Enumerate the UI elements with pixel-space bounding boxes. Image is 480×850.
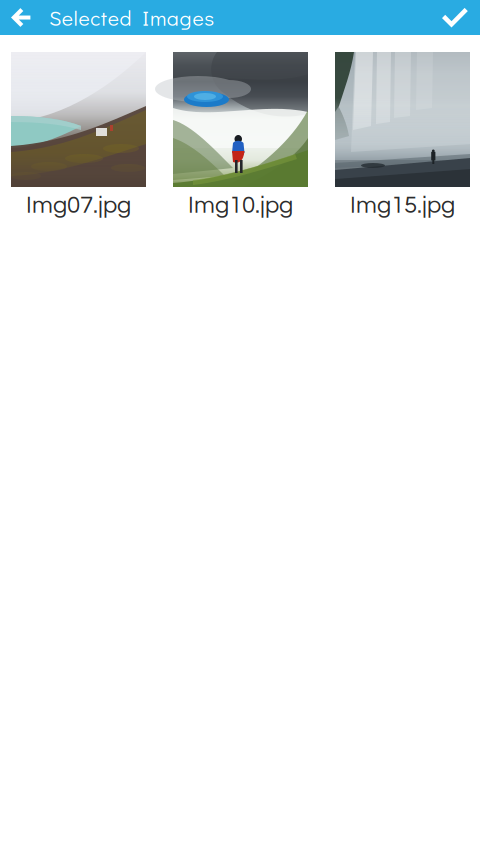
button[interactable]: Img07.jpg bbox=[11, 52, 146, 218]
button[interactable]: Confirm selection bbox=[436, 0, 474, 35]
staticText: Img07.jpg bbox=[26, 193, 131, 218]
staticText: Img10.jpg bbox=[188, 193, 293, 218]
staticText: Selected Images bbox=[49, 3, 214, 31]
staticText: Img15.jpg bbox=[350, 193, 455, 218]
button[interactable]: Img15.jpg bbox=[335, 52, 470, 218]
button[interactable]: Img10.jpg bbox=[173, 52, 308, 218]
button[interactable]: Back bbox=[5, 0, 37, 35]
